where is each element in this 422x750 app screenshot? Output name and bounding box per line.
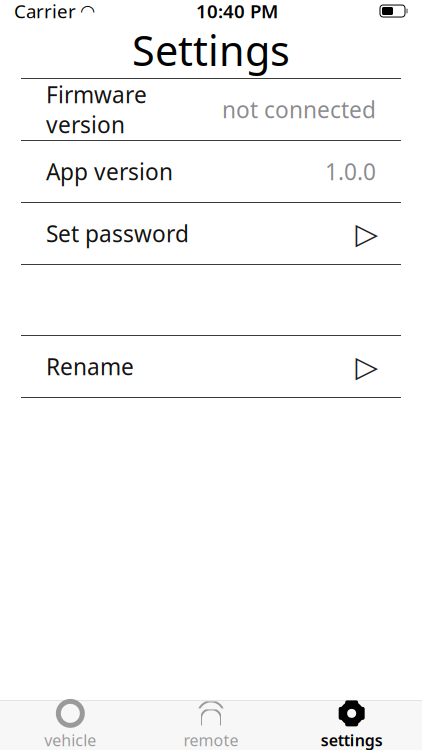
staticText: Rename (46, 351, 134, 381)
staticText: Firmware version (46, 79, 147, 140)
staticText: settings (321, 729, 383, 750)
button[interactable]: App version (21, 141, 401, 202)
button[interactable]: settings (281, 700, 422, 750)
staticText: Carrier (14, 0, 76, 23)
button[interactable]: vehicle (0, 700, 141, 750)
staticText: ◠ (81, 1, 94, 21)
staticText: ▷ (355, 217, 378, 250)
staticText: vehicle (44, 729, 96, 750)
staticText: Settings (132, 23, 290, 77)
button[interactable]: Firmware version (21, 79, 401, 140)
button[interactable]: Set password (21, 203, 401, 264)
staticText: not connected (222, 94, 376, 124)
staticText: Set password (46, 218, 189, 248)
staticText: 1.0.0 (325, 156, 376, 186)
staticText: remote (183, 729, 238, 750)
staticText: ▷ (355, 350, 378, 383)
button[interactable]: Rename (21, 336, 401, 397)
staticText: 10:40 PM (196, 0, 278, 23)
staticText: App version (46, 156, 173, 186)
button[interactable]: remote (141, 700, 281, 750)
